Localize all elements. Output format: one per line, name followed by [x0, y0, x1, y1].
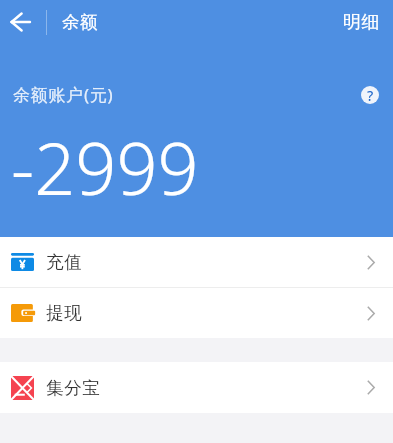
button[interactable]: 提现 — [0, 288, 393, 338]
staticText: 充值 — [46, 251, 82, 273]
staticText: 集分宝 — [46, 377, 100, 399]
staticText: 余额 — [62, 11, 99, 33]
button[interactable]: Back — [0, 0, 46, 44]
button[interactable]: Help — [361, 86, 379, 104]
staticText: 提现 — [46, 302, 82, 324]
button[interactable]: 充值 — [0, 237, 393, 287]
staticText: ? — [367, 86, 374, 104]
button[interactable]: 明细 — [330, 0, 393, 44]
staticText: -2999 — [11, 118, 199, 216]
staticText: 余额账户(元) — [13, 83, 114, 106]
staticText: 明细 — [343, 11, 381, 34]
button[interactable]: 集分宝 — [0, 362, 393, 413]
